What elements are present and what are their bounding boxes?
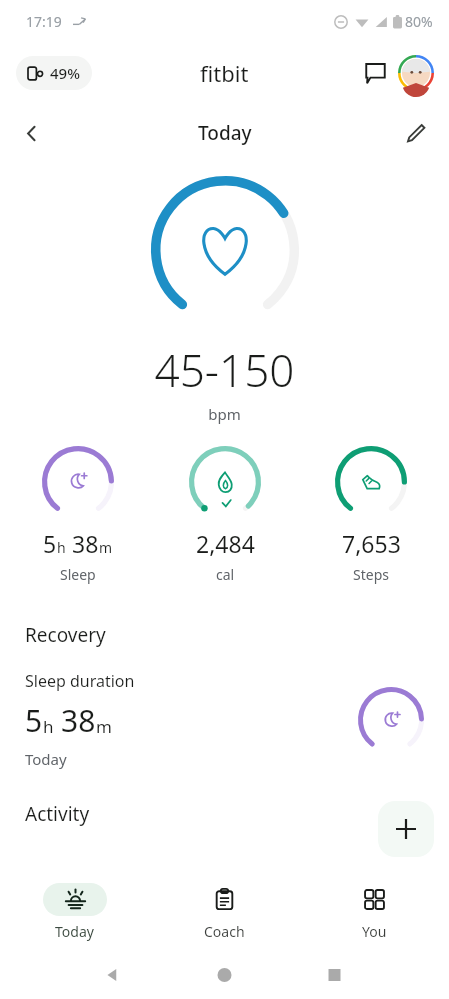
- staticText: 5: [25, 700, 43, 741]
- staticText: Steps: [353, 565, 389, 584]
- staticText: Today: [55, 922, 94, 941]
- button[interactable]: Sleep duration: [0, 670, 449, 769]
- staticText: cal: [216, 565, 235, 584]
- staticText: 38: [61, 700, 96, 741]
- staticText: Activity: [25, 801, 449, 827]
- staticText: bpm: [0, 404, 449, 424]
- staticText: Recovery: [25, 622, 449, 648]
- staticText: 49%: [50, 63, 80, 83]
- staticText: 5: [43, 528, 57, 559]
- staticText: Coach: [204, 922, 245, 941]
- staticText: Today: [25, 749, 67, 769]
- staticText: Sleep duration: [25, 670, 135, 692]
- staticText: fitbit: [200, 58, 249, 88]
- staticText: 7,653: [342, 528, 401, 559]
- staticText: h: [43, 715, 54, 738]
- button[interactable]: Steps: [311, 446, 431, 584]
- staticText: m: [99, 538, 113, 557]
- button[interactable]: Sleep: [18, 446, 138, 584]
- button[interactable]: Add: [378, 801, 434, 857]
- staticText: m: [96, 715, 112, 738]
- staticText: 45-150: [0, 340, 449, 400]
- button[interactable]: Today: [0, 883, 149, 941]
- button[interactable]: Profile: [397, 54, 435, 92]
- button[interactable]: 49%: [16, 56, 92, 90]
- staticText: h: [57, 538, 66, 557]
- staticText: 17:19: [26, 12, 62, 31]
- button[interactable]: Edit: [395, 112, 437, 154]
- staticText: Today: [198, 120, 252, 146]
- button[interactable]: You: [299, 883, 449, 941]
- staticText: 80%: [405, 12, 433, 31]
- button[interactable]: Back: [10, 112, 52, 154]
- staticText: 2,484: [196, 528, 255, 559]
- button[interactable]: Coach: [149, 883, 299, 941]
- staticText: Sleep: [60, 565, 96, 584]
- button[interactable]: Messages: [355, 53, 395, 93]
- staticText: 38: [66, 528, 99, 559]
- staticText: You: [362, 922, 387, 941]
- button[interactable]: Calories: [165, 446, 285, 584]
